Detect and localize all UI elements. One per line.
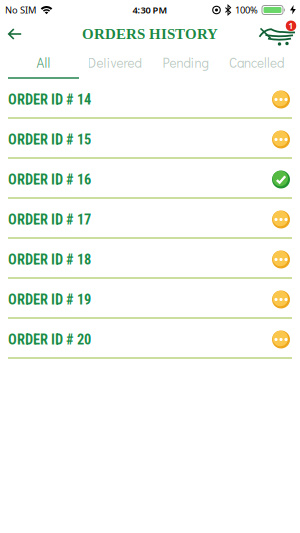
staticText: 1: [288, 20, 293, 31]
staticText: ORDER ID # 19: [8, 291, 91, 308]
staticText: ORDER ID # 16: [8, 171, 91, 188]
button[interactable]: ORDER ID # 16: [0, 159, 300, 199]
button[interactable]: ORDER ID # 17: [0, 199, 300, 239]
staticText: Pending: [162, 54, 208, 71]
staticText: Delivered: [87, 54, 141, 71]
button[interactable]: ORDER ID # 15: [0, 119, 300, 159]
button[interactable]: Cancelled: [221, 48, 292, 79]
staticText: 100%: [235, 4, 258, 16]
staticText: ORDER ID # 15: [8, 131, 91, 148]
button[interactable]: ORDER ID # 14: [0, 79, 300, 119]
staticText: 4:30 PM: [132, 4, 167, 16]
staticText: Cancelled: [229, 54, 284, 71]
staticText: ORDER ID # 17: [8, 211, 91, 228]
button[interactable]: Cart: [255, 19, 300, 49]
staticText: ORDERS HISTORY: [82, 26, 218, 42]
staticText: ORDER ID # 18: [8, 251, 91, 268]
button[interactable]: ORDER ID # 19: [0, 279, 300, 319]
button[interactable]: ORDER ID # 18: [0, 239, 300, 279]
staticText: All: [36, 54, 50, 71]
staticText: No SIM: [5, 4, 36, 16]
staticText: ORDER ID # 14: [8, 91, 91, 108]
staticText: ORDER ID # 20: [8, 331, 91, 348]
button[interactable]: All: [8, 48, 79, 79]
button[interactable]: Delivered: [79, 48, 150, 79]
button[interactable]: Back: [0, 20, 22, 47]
button[interactable]: ORDER ID # 20: [0, 319, 300, 359]
button[interactable]: Pending: [150, 48, 221, 79]
